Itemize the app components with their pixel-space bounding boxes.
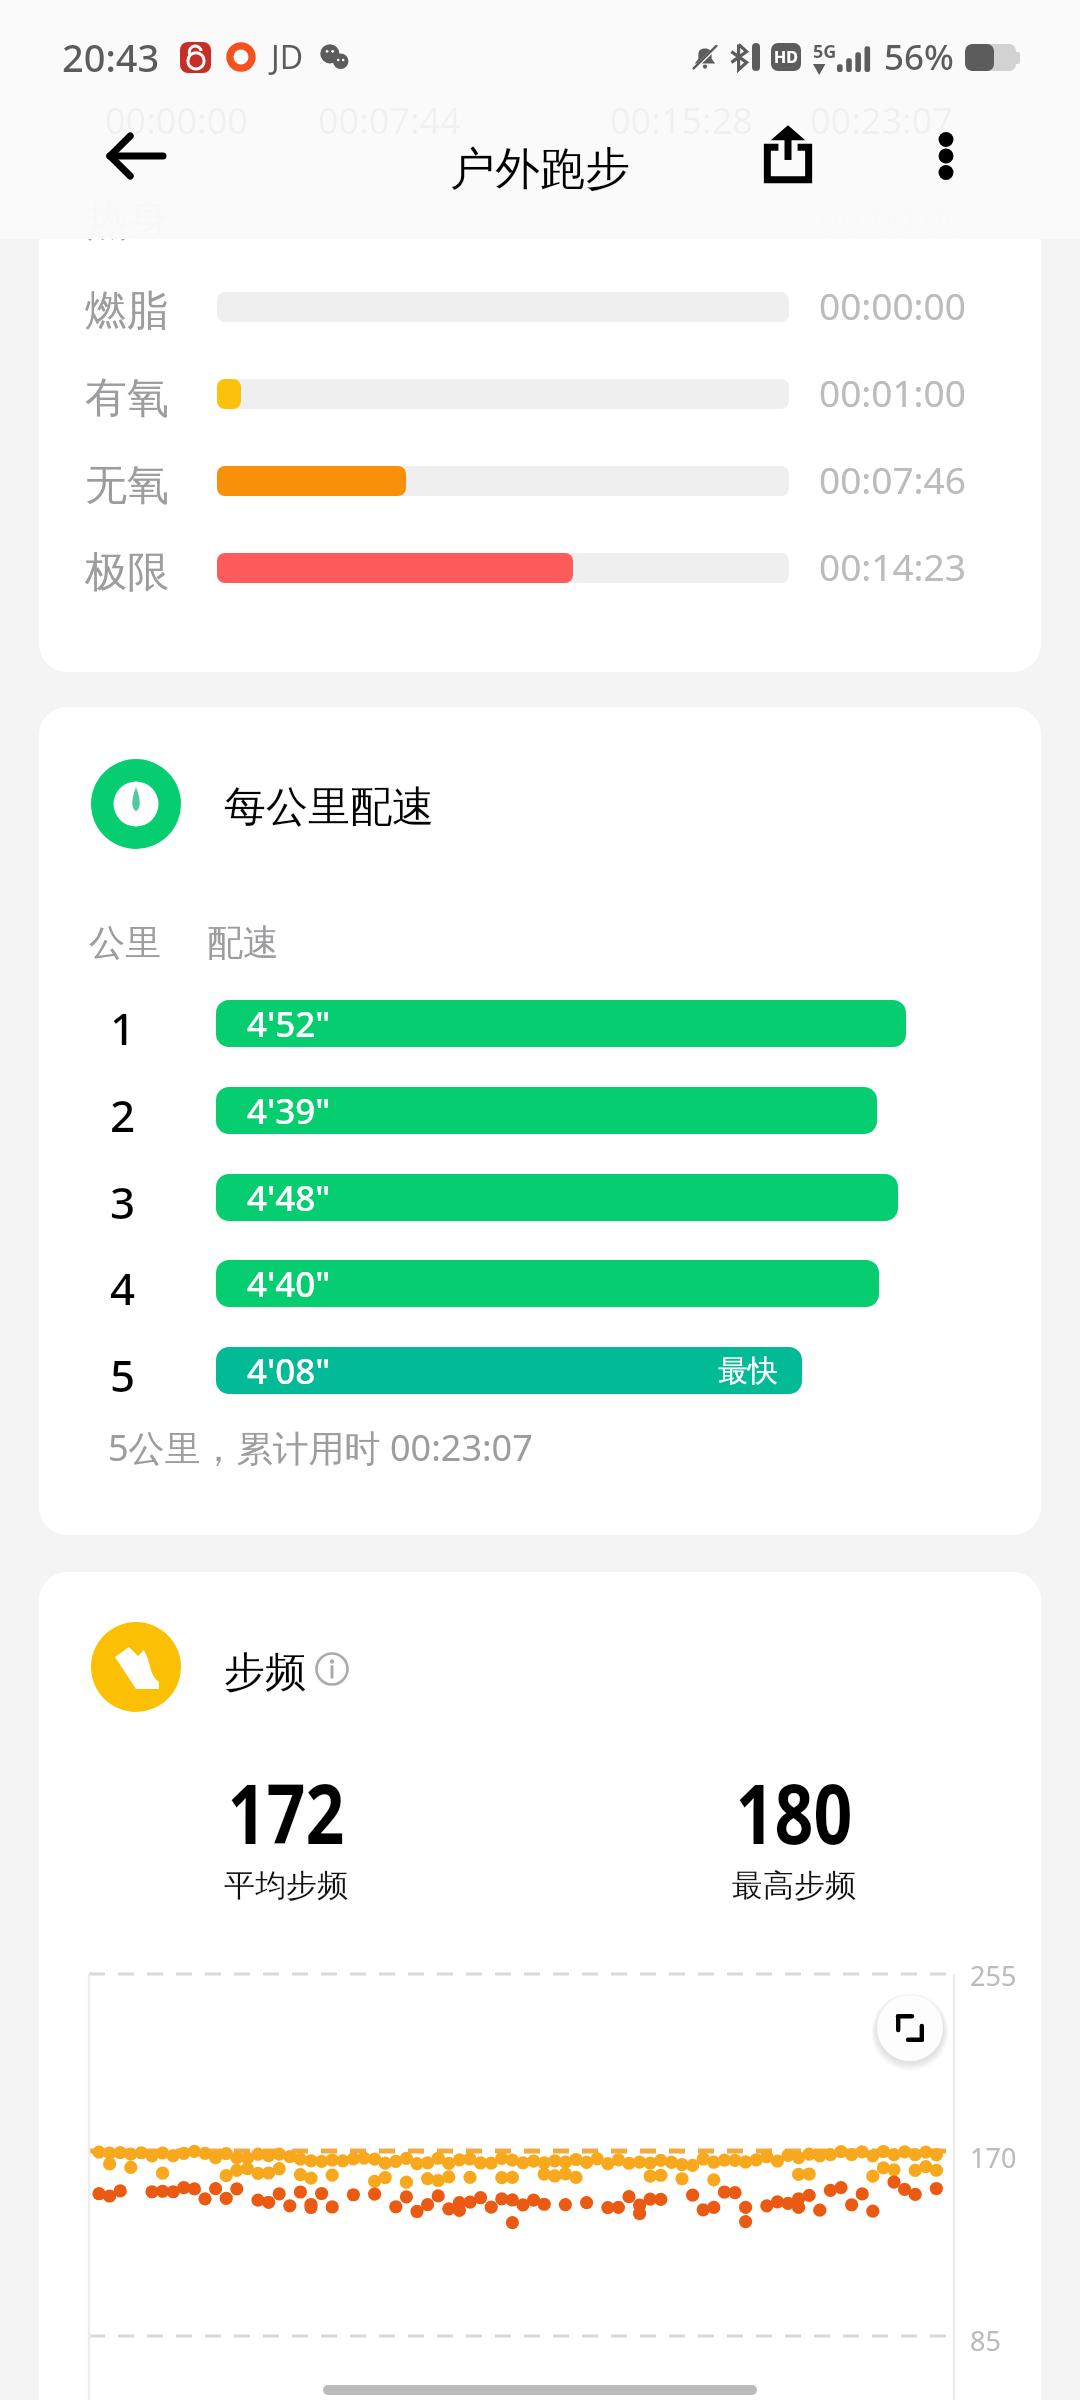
staticText: JD: [271, 35, 304, 79]
button[interactable]: 4'48": [216, 1174, 898, 1221]
staticText: 4'08": [247, 1347, 331, 1394]
staticText: 1: [110, 998, 136, 1058]
staticText: 4'39": [247, 1087, 331, 1134]
staticText: 20:43: [62, 31, 160, 83]
button[interactable]: Share: [738, 103, 838, 203]
button[interactable]: 4'52": [216, 1000, 906, 1047]
staticText: 户外跑步: [0, 141, 1080, 198]
staticText: 4'52": [247, 1000, 331, 1047]
staticText: 3: [110, 1172, 136, 1232]
staticText: HD: [774, 46, 798, 68]
staticText: 最快: [718, 1352, 778, 1390]
staticText: 170: [970, 2139, 1017, 2176]
staticText: 无氧: [85, 459, 169, 512]
staticText: 00:23:07: [810, 96, 953, 145]
staticText: 极限: [85, 546, 169, 599]
staticText: 00:01:00: [819, 367, 966, 417]
staticText: 56%: [884, 33, 954, 81]
button[interactable]: 4'08": [216, 1347, 802, 1394]
staticText: 00:07:46: [819, 454, 966, 504]
button[interactable]: 4'39": [216, 1087, 877, 1134]
button[interactable]: More options: [896, 106, 996, 206]
staticText: 00:00:00: [819, 280, 966, 330]
staticText: 燃脂: [85, 285, 169, 338]
staticText: 00:14:23: [819, 541, 966, 591]
button[interactable]: Back: [88, 108, 184, 204]
staticText: 步频: [224, 1647, 306, 1699]
button[interactable]: 4'40": [216, 1260, 879, 1307]
staticText: 公里: [89, 920, 161, 965]
staticText: 平均步频: [0, 1866, 572, 1905]
staticText: 热身: [85, 194, 169, 247]
staticText: 4'48": [247, 1174, 331, 1221]
button[interactable]: Expand chart: [877, 1995, 943, 2061]
staticText: 00:00:00: [105, 96, 248, 145]
staticText: 2: [110, 1085, 136, 1145]
staticText: 172: [51, 1755, 520, 1868]
staticText: 5公里，累计用时 00:23:07: [108, 1423, 533, 1472]
staticText: 5G: [813, 39, 837, 64]
staticText: 4'40": [247, 1260, 331, 1307]
staticText: 00:15:28: [610, 96, 753, 145]
staticText: 每公里配速: [224, 781, 434, 834]
staticText: 最高步频: [508, 1866, 1080, 1905]
staticText: 180: [559, 1755, 1028, 1868]
staticText: 4: [110, 1258, 136, 1318]
staticText: 85: [970, 2322, 1001, 2359]
staticText: 5: [110, 1345, 136, 1405]
staticText: 配速: [207, 920, 279, 965]
staticText: 有氧: [85, 372, 169, 425]
staticText: 00:07:44: [318, 96, 461, 145]
staticText: 255: [970, 1957, 1017, 1994]
